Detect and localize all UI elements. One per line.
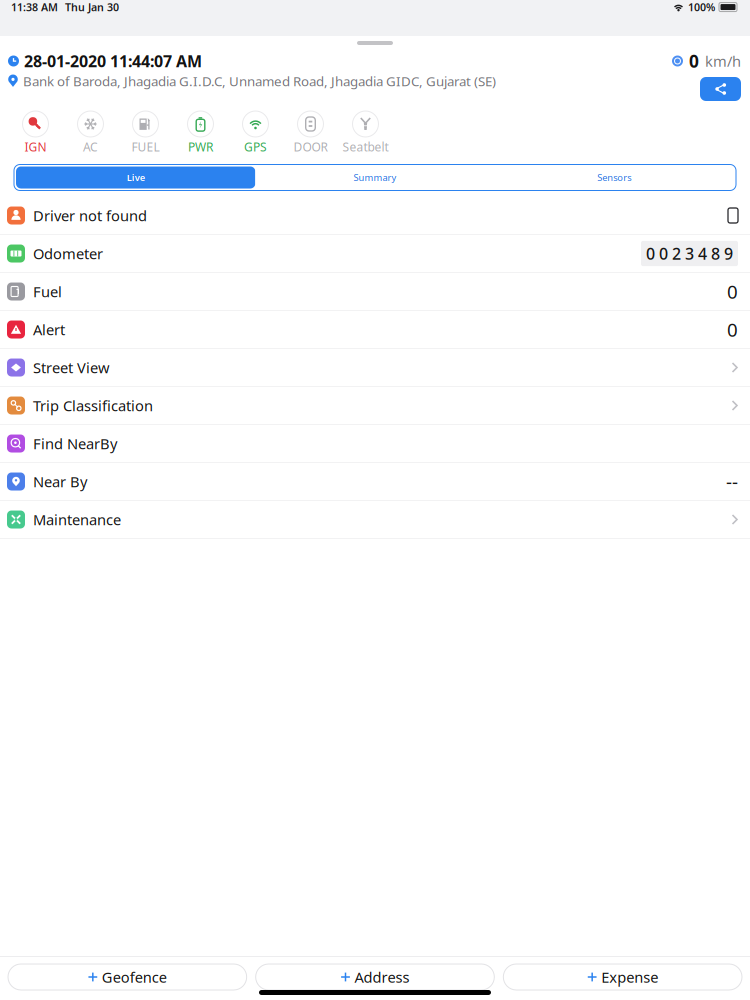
button[interactable]: Expense <box>503 964 742 990</box>
button[interactable]: GPS <box>228 111 283 155</box>
staticText: Near By <box>33 472 87 491</box>
staticText: Maintenance <box>33 510 121 529</box>
button[interactable]: Find NearBy <box>0 425 750 463</box>
staticText: GPS <box>244 139 267 155</box>
staticText: Live <box>127 171 145 184</box>
button[interactable]: Geofence <box>8 964 247 990</box>
staticText: 0 <box>727 317 738 342</box>
staticText: 0 0 2 3 4 8 9 <box>646 243 733 264</box>
staticText: Find NearBy <box>33 434 117 453</box>
button[interactable]: Near By <box>0 463 750 501</box>
staticText: IGN <box>24 139 46 155</box>
staticText: Driver not found <box>33 206 147 225</box>
staticText: DOOR <box>293 139 327 155</box>
staticText: Alert <box>33 320 65 339</box>
button[interactable]: IGN <box>8 111 63 155</box>
staticText: 0 <box>727 279 738 304</box>
button[interactable]: AC <box>63 111 118 155</box>
staticText: Expense <box>601 967 658 987</box>
staticText: km/h <box>705 51 741 71</box>
button[interactable]: Fuel <box>0 273 750 311</box>
button[interactable]: Seatbelt <box>338 111 393 155</box>
staticText: 100% <box>688 0 715 14</box>
button[interactable]: PWR <box>173 111 228 155</box>
staticText: -- <box>726 469 738 494</box>
staticText: Street View <box>33 358 110 377</box>
staticText: Odometer <box>33 244 103 263</box>
staticText: PWR <box>188 139 213 155</box>
staticText: Summary <box>353 171 396 184</box>
button[interactable]: Address <box>256 964 494 990</box>
staticText: Sensors <box>597 171 631 184</box>
staticText: Thu Jan 30 <box>65 0 119 14</box>
staticText: 11:38 AM <box>11 0 58 14</box>
button[interactable]: FUEL <box>118 111 173 155</box>
staticText: FUEL <box>131 139 159 155</box>
button[interactable]: Summary <box>255 166 495 188</box>
button[interactable]: Odometer <box>0 235 750 273</box>
staticText: Fuel <box>33 282 62 301</box>
button[interactable]: Maintenance <box>0 501 750 539</box>
staticText: Seatbelt <box>342 139 388 155</box>
button[interactable]: Driver not found <box>0 197 750 235</box>
button[interactable]: Alert <box>0 311 750 349</box>
button[interactable]: Share <box>700 77 741 101</box>
button[interactable]: DOOR <box>283 111 338 155</box>
staticText: Bank of Baroda, Jhagadia G.I.D.C, Unname… <box>23 72 496 90</box>
button[interactable]: Street View <box>0 349 750 387</box>
button[interactable]: Live <box>16 166 255 188</box>
staticText: AC <box>83 139 98 155</box>
button[interactable]: Sensors <box>495 166 734 188</box>
staticText: 28-01-2020 11:44:07 AM <box>24 50 202 72</box>
staticText: Trip Classification <box>33 396 153 415</box>
staticText: Address <box>354 967 409 987</box>
staticText: Geofence <box>102 967 167 987</box>
staticText: 0 <box>689 49 699 72</box>
button[interactable]: Trip Classification <box>0 387 750 425</box>
